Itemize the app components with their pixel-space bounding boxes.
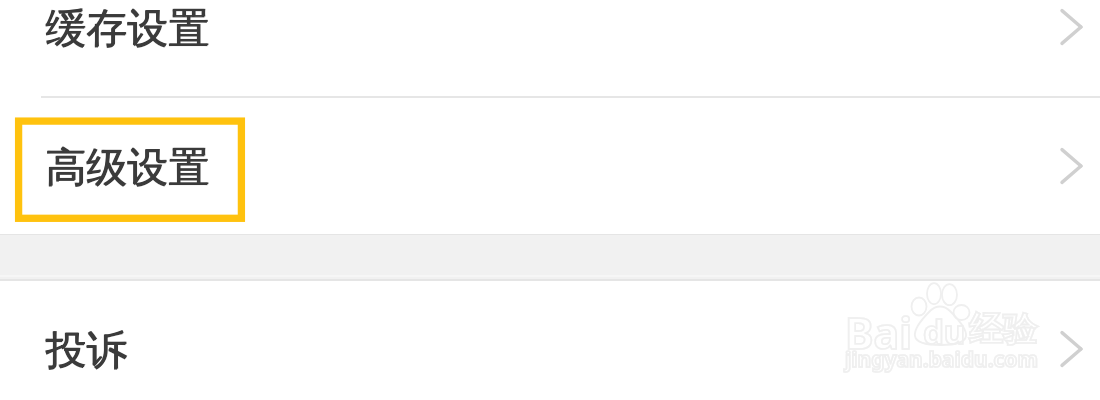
button[interactable]: 投诉 (0, 281, 1100, 400)
staticText: 高级设置 (45, 142, 209, 194)
button[interactable]: 高级设置 (0, 98, 1100, 234)
other: Open 高级设置 (1042, 134, 1100, 198)
staticText: 缓存设置 (46, 3, 210, 55)
staticText: 投诉 (45, 325, 127, 377)
other: Open 缓存设置 (1042, 0, 1100, 59)
staticText: jingyan.baidu.com (845, 345, 1038, 374)
staticText: 缓存设置 (45, 3, 209, 55)
staticText: 缓存设置 (45, 4, 209, 56)
staticText: 投诉 (46, 325, 128, 377)
staticText: 高级设置 (46, 142, 210, 194)
staticText: Bai (845, 303, 913, 362)
staticText: 投诉 (45, 326, 127, 378)
staticText: 高级设置 (45, 143, 209, 195)
other: Open 投诉 (1042, 317, 1100, 381)
button[interactable]: 缓存设置 (0, 0, 1100, 96)
staticText: 经验 (969, 308, 1037, 351)
staticText: du (923, 309, 966, 354)
